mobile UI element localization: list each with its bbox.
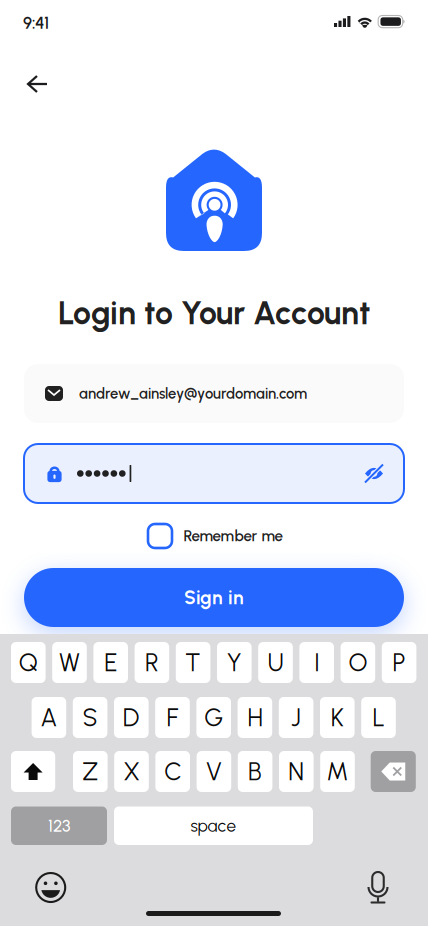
staticText: C: [164, 757, 181, 786]
staticText: L: [372, 703, 384, 732]
button[interactable]: Back: [14, 62, 61, 106]
staticText: Q: [19, 648, 38, 677]
button[interactable]: N: [279, 751, 314, 792]
button[interactable]: P: [382, 642, 416, 683]
staticText: andrew_ainsley@yourdomain.com: [79, 385, 307, 402]
button[interactable]: L: [361, 697, 396, 738]
staticText: G: [204, 703, 223, 732]
button[interactable]: Y: [217, 642, 252, 683]
button[interactable]: S: [73, 697, 107, 738]
staticText: D: [123, 703, 140, 732]
staticText: U: [267, 648, 283, 677]
button[interactable]: Z: [73, 751, 108, 792]
button[interactable]: E: [93, 642, 128, 683]
staticText: R: [145, 648, 159, 677]
staticText: T: [185, 648, 201, 677]
button[interactable]: U: [258, 642, 293, 683]
button[interactable]: Remember me: [148, 521, 283, 551]
button[interactable]: Shift: [11, 751, 55, 792]
staticText: P: [393, 648, 406, 677]
button[interactable]: M: [320, 751, 355, 792]
staticText: 123: [48, 815, 70, 836]
staticText: S: [83, 703, 98, 732]
button[interactable]: G: [196, 697, 231, 738]
staticText: 9:41: [23, 13, 49, 33]
button[interactable]: K: [320, 697, 355, 738]
button[interactable]: H: [238, 697, 272, 738]
button[interactable]: B: [238, 751, 272, 792]
button[interactable]: J: [279, 697, 313, 738]
staticText: M: [326, 757, 348, 786]
staticText: Remember me: [183, 527, 282, 545]
staticText: space: [190, 815, 236, 836]
staticText: Y: [227, 648, 242, 677]
staticText: Login to Your Account: [58, 294, 370, 332]
button[interactable]: C: [155, 751, 190, 792]
staticText: J: [291, 703, 301, 732]
staticText: F: [166, 703, 178, 732]
staticText: H: [247, 703, 262, 732]
button[interactable]: O: [341, 642, 375, 683]
button[interactable]: X: [114, 751, 149, 792]
button[interactable]: 123: [11, 806, 107, 845]
button[interactable]: F: [155, 697, 190, 738]
staticText: X: [123, 757, 139, 786]
button[interactable]: I: [299, 642, 334, 683]
button[interactable]: D: [114, 697, 149, 738]
staticText: O: [348, 648, 367, 677]
button[interactable]: Delete: [371, 751, 416, 792]
staticText: I: [314, 648, 319, 677]
staticText: A: [40, 703, 57, 732]
button[interactable]: A: [32, 697, 66, 738]
button[interactable]: T: [176, 642, 210, 683]
button[interactable]: Emoji: [31, 867, 71, 907]
staticText: W: [59, 648, 80, 677]
staticText: Sign in: [184, 586, 244, 609]
staticText: B: [248, 757, 262, 786]
button[interactable]: R: [135, 642, 169, 683]
staticText: K: [331, 703, 344, 732]
button[interactable]: space: [114, 806, 313, 845]
staticText: N: [288, 757, 304, 786]
button[interactable]: Sign in: [24, 568, 404, 627]
staticText: Z: [82, 757, 98, 786]
staticText: V: [206, 757, 222, 786]
button[interactable]: W: [52, 642, 87, 683]
button[interactable]: V: [197, 751, 231, 792]
button[interactable]: Dictation: [361, 867, 395, 907]
staticText: E: [104, 648, 117, 677]
button[interactable]: Q: [11, 642, 46, 683]
